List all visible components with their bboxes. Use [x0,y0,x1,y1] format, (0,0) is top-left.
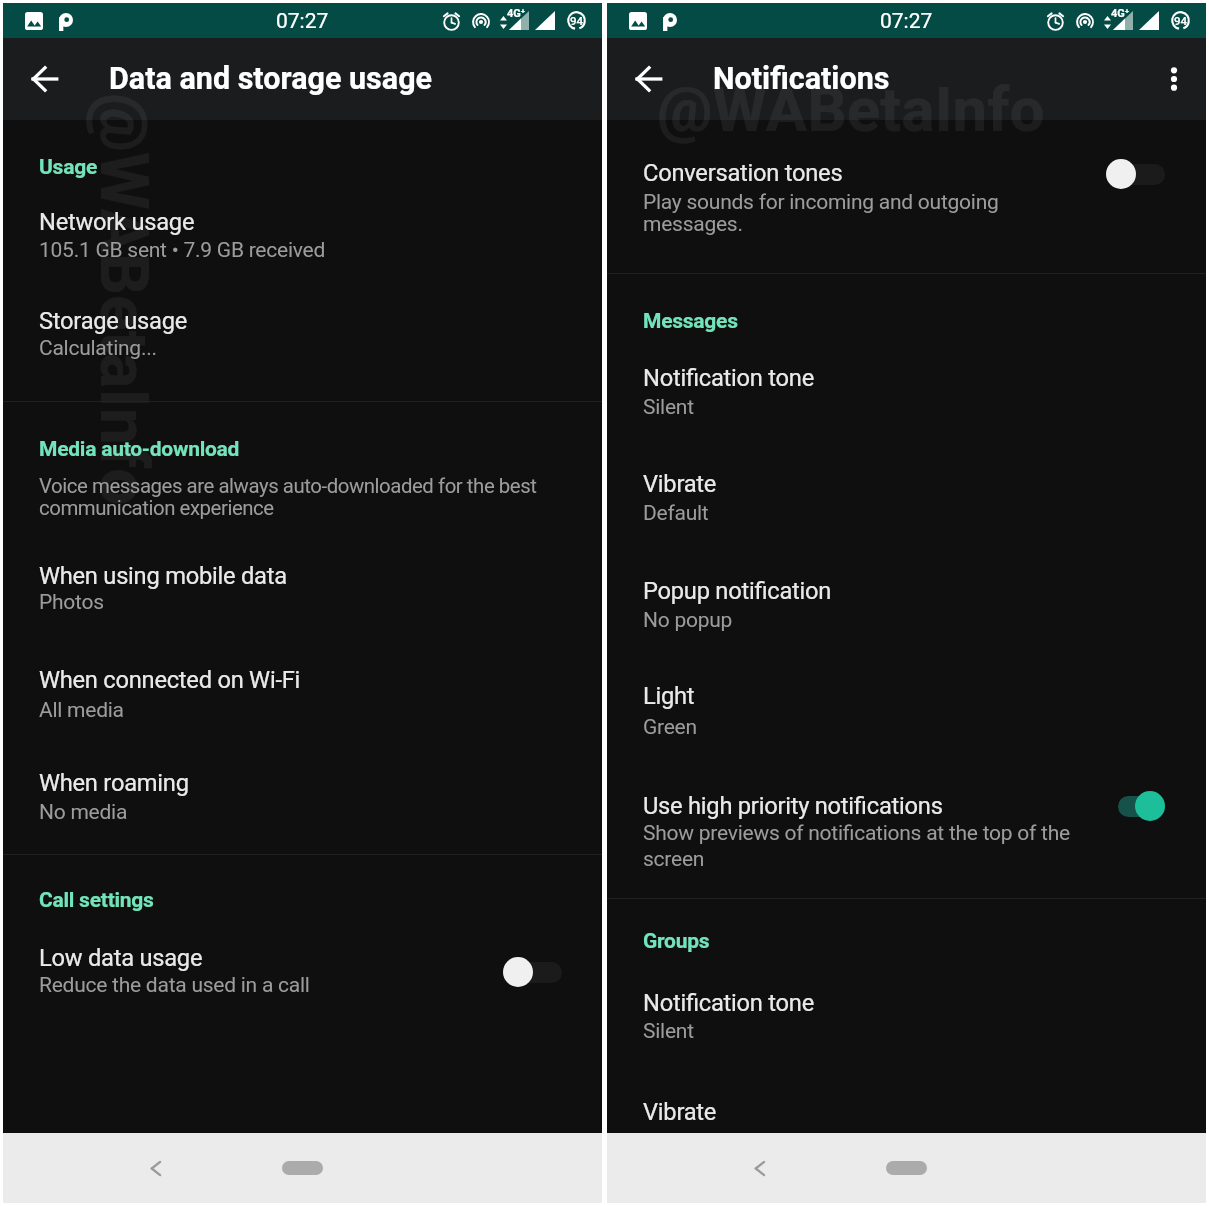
button[interactable]: Conversation tones [607,140,1206,248]
staticText: When connected on Wi-Fi [39,666,301,694]
staticText: Light [643,682,695,710]
button[interactable]: When roaming [3,749,602,833]
button[interactable]: Notification tone [607,968,1206,1052]
staticText: Network usage [39,208,195,236]
staticText: Photos [39,590,104,615]
staticText: Popup notification [643,577,832,605]
button[interactable]: Notification tone [607,344,1206,428]
staticText: Notification tone [643,364,814,392]
staticText: Call settings [39,888,154,913]
staticText: Data and storage usage [109,61,433,97]
button[interactable]: Voice messages are always auto-downloade… [3,432,602,532]
staticText: Use high priority notifications [643,792,943,820]
staticText: Usage [39,155,97,180]
staticText: Green [643,715,697,740]
staticText: Low data usage [39,944,203,972]
button[interactable]: Navigate back [623,54,673,104]
staticText: Vibrate [643,1098,717,1126]
staticText: When using mobile data [39,562,287,590]
button[interactable]: Network usage [3,188,602,272]
button[interactable]: Switch off [509,950,569,994]
staticText: Play sounds for incoming and outgoing me… [643,190,1023,236]
staticText: 07:27 [880,9,933,34]
button[interactable]: Vibrate [607,450,1206,534]
button[interactable]: Low data usage [3,923,602,1007]
staticText: Reduce the data used in a call [39,973,310,998]
staticText: @WABetaInfo [85,93,162,506]
button[interactable]: Switch on [1112,784,1172,828]
button[interactable]: Storage usage [3,286,602,370]
staticText: Notifications [713,61,890,97]
staticText: No popup [643,608,733,633]
staticText: No media [39,800,128,825]
staticText: Vibrate [643,470,717,498]
staticText: 94 [1174,14,1188,27]
staticText: Voice messages are always auto-downloade… [39,474,539,520]
button[interactable]: When connected on Wi-Fi [3,646,602,730]
staticText: Silent [643,1019,694,1044]
staticText: Notification tone [643,989,814,1017]
staticText: Show previews of notifications at the to… [643,821,1077,871]
button[interactable]: Navigate back [19,54,69,104]
button[interactable]: When using mobile data [3,541,602,625]
button[interactable]: Back [737,1146,781,1190]
staticText: Silent [643,395,694,420]
staticText: Media auto-download [39,437,240,462]
staticText: Calculating... [39,336,157,361]
staticText: Groups [643,929,710,954]
button[interactable]: Home [282,1161,323,1175]
button[interactable]: Light [607,662,1206,748]
staticText: Storage usage [39,307,188,335]
button[interactable]: More options [1149,54,1199,104]
staticText: 4G⁺ [507,7,526,20]
button[interactable]: Vibrate [607,1078,1206,1130]
staticText: All media [39,698,124,723]
staticText: Conversation tones [643,159,843,187]
staticText: 4G⁺ [1111,7,1130,20]
staticText: 105.1 GB sent • 7.9 GB received [39,238,326,263]
button[interactable]: Popup notification [607,557,1206,641]
button[interactable]: Home [886,1161,927,1175]
staticText: Default [643,501,709,526]
staticText: Messages [643,309,738,334]
staticText: When roaming [39,769,189,797]
staticText: 07:27 [276,9,329,34]
staticText: 94 [570,14,584,27]
button[interactable]: Switch off [1112,152,1172,196]
button[interactable]: Back [133,1146,177,1190]
staticText: @WABetaInfo [657,73,1045,146]
button[interactable]: Use high priority notifications [607,772,1206,882]
